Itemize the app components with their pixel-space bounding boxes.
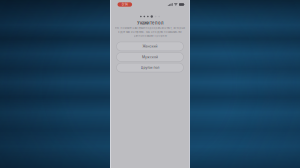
- button[interactable]: Мужской: [116, 52, 183, 61]
- staticText: Мужской: [142, 55, 158, 59]
- staticText: будет вам интересен. Мы не будем показыв…: [118, 30, 182, 33]
- staticText: 0:14: [122, 3, 128, 6]
- staticText: данные в вашем профиле: [133, 34, 166, 37]
- staticText: Другой пол: [140, 66, 159, 70]
- staticText: Укажите пол: [137, 20, 163, 25]
- button[interactable]: Другой пол: [116, 63, 183, 72]
- button[interactable]: Женский: [116, 42, 183, 51]
- staticText: Женский: [142, 44, 157, 48]
- staticText: Это поможет нам лучше подобрать контент,…: [114, 26, 185, 30]
